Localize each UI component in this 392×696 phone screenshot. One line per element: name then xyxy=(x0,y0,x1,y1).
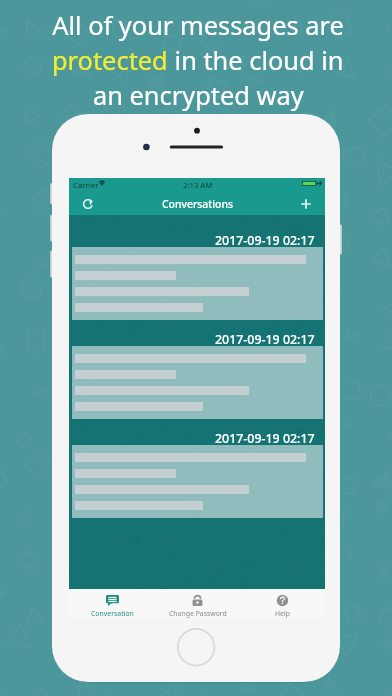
staticText: in the cloud in xyxy=(168,43,344,78)
staticText: an encrypted way xyxy=(93,78,304,113)
staticText: 2017-09-19 02:17 xyxy=(215,232,315,249)
button[interactable]: Conversation xyxy=(69,589,155,618)
staticText: protected xyxy=(52,43,168,78)
staticText: Change Password xyxy=(169,609,227,618)
staticText: 2017-09-19 02:17 xyxy=(215,430,315,447)
button[interactable]: Refresh xyxy=(76,193,100,215)
staticText: 2017-09-19 02:17 xyxy=(215,331,315,348)
button[interactable] xyxy=(72,346,323,419)
staticText: Conversation xyxy=(91,609,134,618)
staticText: Carrier xyxy=(73,180,99,190)
button[interactable] xyxy=(72,445,323,518)
button[interactable]: New conversation xyxy=(294,193,318,215)
button[interactable]: Change Password xyxy=(155,589,240,618)
button[interactable]: Help xyxy=(240,589,325,618)
staticText: Help xyxy=(275,609,291,618)
staticText: Conversations xyxy=(162,197,233,211)
staticText: All of your messages are xyxy=(52,8,344,43)
staticText: 2:13 AM xyxy=(183,180,213,190)
button[interactable] xyxy=(72,247,323,320)
